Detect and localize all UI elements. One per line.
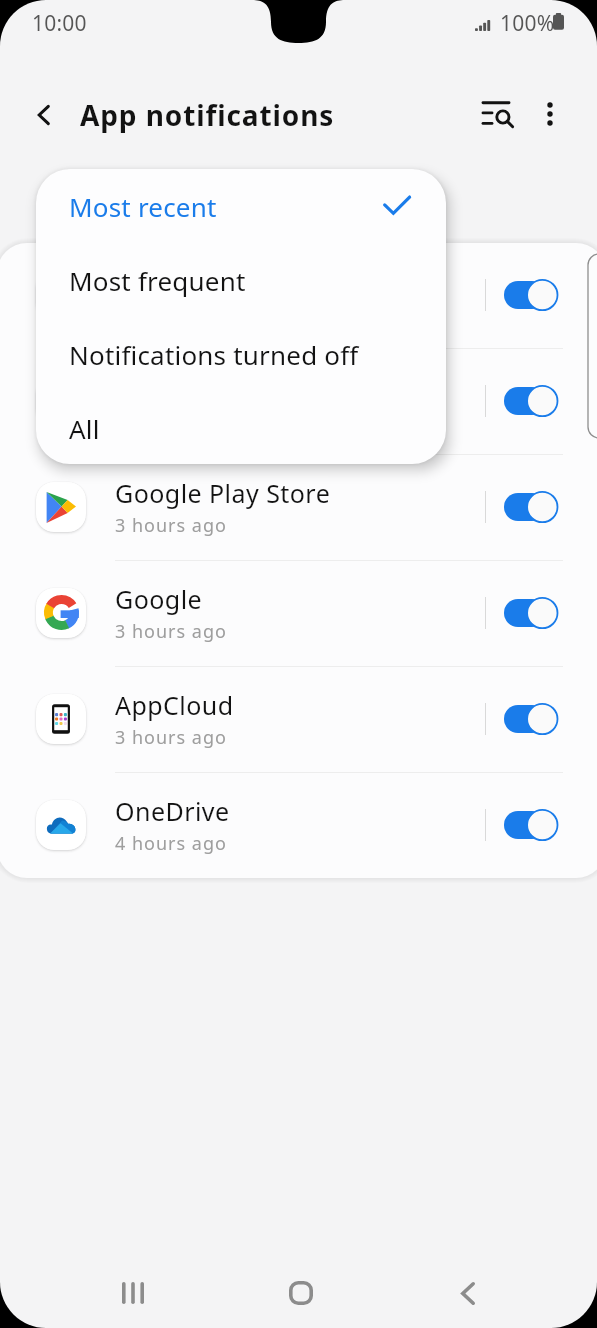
staticText: 3 hours ago [115,619,227,644]
button[interactable]: Messages [0,348,597,454]
button[interactable]: Recent apps [93,1254,173,1328]
staticText: 4 hours ago [115,831,227,856]
button[interactable]: Google [0,560,597,666]
button[interactable]: Back [428,1254,508,1328]
button[interactable]: More options [526,87,574,143]
button[interactable]: Notifications toggle [504,278,558,312]
staticText: Most recent [69,189,217,224]
button[interactable]: OneDrive [0,772,597,878]
staticText: 3 hours ago [115,725,227,750]
button[interactable]: Home [261,1254,341,1328]
staticText: All [69,411,100,446]
staticText: Most frequent [69,263,246,298]
staticText: Notifications turned off [69,337,359,372]
button[interactable]: Notifications toggle [504,490,558,524]
button[interactable]: Google Play Store [0,454,597,560]
button[interactable]: Notifications turned off [36,317,446,391]
button[interactable]: Most recent [36,169,446,243]
button[interactable]: Samsung Internet [0,242,597,348]
staticText: 100% [500,9,555,38]
staticText: OneDrive [115,794,230,828]
button[interactable]: Notifications toggle [504,596,558,630]
staticText: AppCloud [115,688,234,722]
staticText: 3 hours ago [115,513,227,538]
staticText: Samsung Internet [115,264,335,298]
button[interactable]: Most frequent [36,243,446,317]
staticText: Google Play Store [115,476,331,510]
button[interactable]: Notifications toggle [504,702,558,736]
button[interactable]: Notifications toggle [504,808,558,842]
staticText: Google [115,582,203,616]
button[interactable]: Search [470,87,526,143]
staticText: App notifications [80,96,335,134]
button[interactable]: All [36,391,446,464]
staticText: 10:00 [32,9,87,38]
button[interactable]: Notifications toggle [504,384,558,418]
button[interactable]: Navigate up [18,89,70,141]
button[interactable]: AppCloud [0,666,597,772]
